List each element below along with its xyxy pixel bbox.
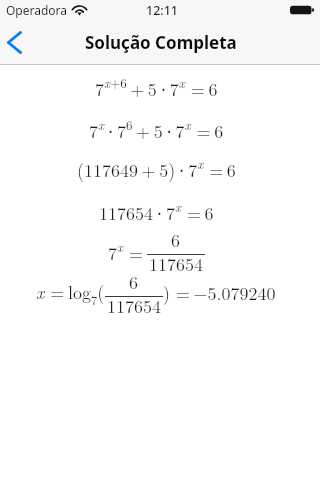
staticText: 7x = <box>108 237 147 265</box>
button[interactable]: Back <box>0 20 44 64</box>
staticText: 117654 <box>149 251 203 277</box>
staticText: 117654 <box>107 293 161 319</box>
other: Wi-Fi signal <box>73 5 86 15</box>
staticText: ) = −5.079240 <box>163 280 276 306</box>
staticText: 117654 ⋅ 7x = 6 <box>99 197 214 225</box>
staticText: 6 <box>171 227 180 253</box>
staticText: (117649 + 5) ⋅ 7x = 6 <box>77 154 236 182</box>
staticText: 7x ⋅ 76 + 5 ⋅ 7x = 6 <box>89 115 224 143</box>
other: Battery full <box>290 4 315 16</box>
staticText: Operadora <box>6 2 68 18</box>
staticText: Solução Completa <box>85 31 237 54</box>
staticText: x = log7( <box>36 279 105 308</box>
staticText: 12:11 <box>146 2 179 19</box>
staticText: 6 <box>129 269 138 295</box>
staticText: 7x+6 + 5 ⋅ 7x = 6 <box>95 73 218 101</box>
